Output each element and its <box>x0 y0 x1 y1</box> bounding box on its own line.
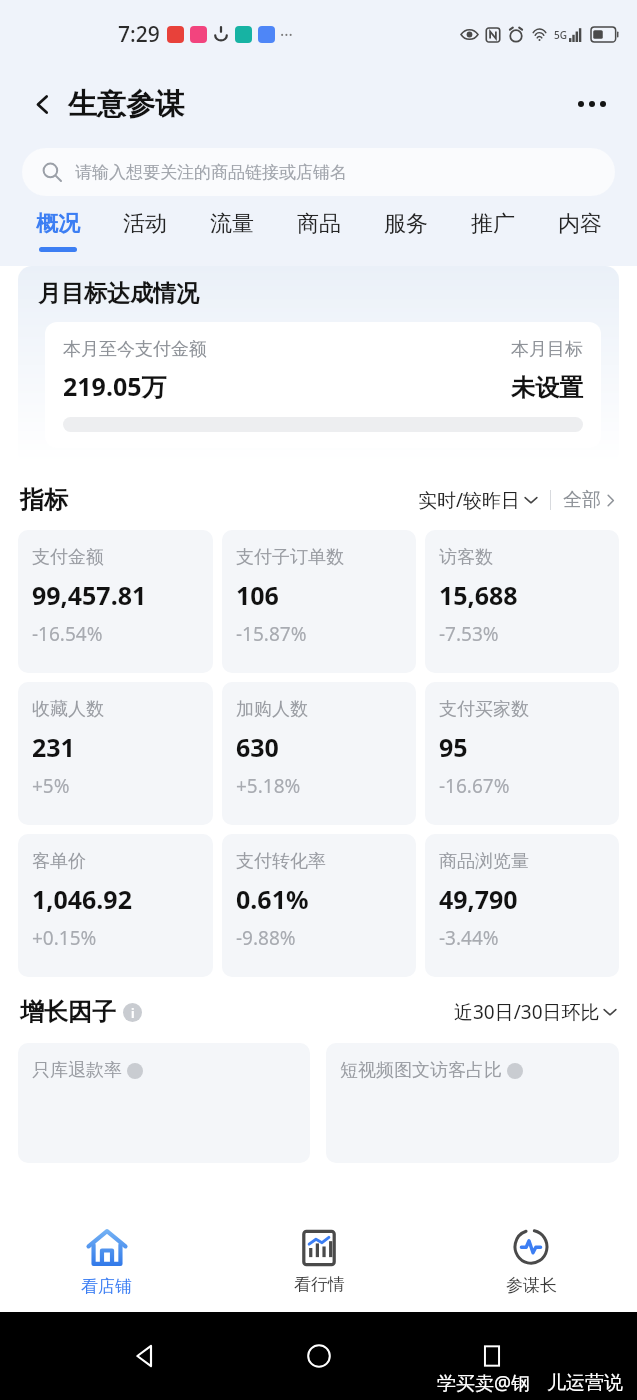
staticText: 指标 <box>20 485 68 515</box>
staticText: 访客数 <box>439 546 493 569</box>
button[interactable]: 概况 <box>14 204 101 266</box>
button[interactable]: 推广 <box>449 204 536 266</box>
staticText: 49,790 <box>439 882 518 916</box>
staticText: 商品浏览量 <box>439 850 529 873</box>
staticText: 支付买家数 <box>439 698 529 721</box>
staticText: +5.18% <box>236 773 301 799</box>
staticText: -7.53% <box>439 621 499 647</box>
staticText: 概况 <box>36 210 80 238</box>
button[interactable]: 内容 <box>536 204 623 266</box>
staticText: 月目标达成情况 <box>38 279 199 308</box>
staticText: 儿运营说 <box>547 1371 623 1395</box>
staticText: 15,688 <box>439 578 518 612</box>
staticText: 106 <box>236 578 279 612</box>
button[interactable]: 支付金额 <box>18 530 213 673</box>
staticText: -16.67% <box>439 773 510 799</box>
button[interactable]: Back <box>117 1328 173 1384</box>
staticText: +0.15% <box>32 925 97 951</box>
staticText: 内容 <box>558 210 602 238</box>
staticText: -16.54% <box>32 621 103 647</box>
button[interactable]: 参谋长 <box>425 1212 637 1312</box>
staticText: 近30日/30日环比 <box>454 999 600 1025</box>
staticText: 请输入想要关注的商品链接或店铺名 <box>75 162 347 183</box>
staticText: 支付金额 <box>32 546 104 569</box>
staticText: -15.87% <box>236 621 307 647</box>
button[interactable]: 支付买家数 <box>425 682 619 825</box>
staticText: 增长因子 <box>20 997 116 1027</box>
button[interactable]: 近30日/30日环比 <box>454 999 617 1025</box>
staticText: 看店铺 <box>81 1276 132 1297</box>
button[interactable]: 商品 <box>275 204 362 266</box>
staticText: 99,457.81 <box>32 578 147 612</box>
staticText: 630 <box>236 730 279 764</box>
button[interactable]: More options <box>569 81 615 127</box>
button[interactable]: 看店铺 <box>0 1212 213 1312</box>
button[interactable]: 商品浏览量 <box>425 834 619 977</box>
staticText: 本月目标 <box>511 338 583 361</box>
staticText: 短视频图文访客占比 <box>340 1059 502 1082</box>
button[interactable]: 客单价 <box>18 834 213 977</box>
staticText: 客单价 <box>32 850 86 873</box>
staticText: 全部 <box>563 488 601 512</box>
staticText: 商品 <box>297 210 341 238</box>
staticText: 本月至今支付金额 <box>63 338 207 361</box>
button[interactable]: 支付子订单数 <box>222 530 416 673</box>
button[interactable]: Home <box>291 1328 347 1384</box>
button[interactable]: 全部 <box>563 488 617 512</box>
staticText: 看行情 <box>294 1274 345 1295</box>
staticText: ··· <box>280 24 293 46</box>
button[interactable]: 只库退款率 <box>18 1043 310 1163</box>
button[interactable]: 看行情 <box>213 1212 425 1312</box>
staticText: 流量 <box>210 210 254 238</box>
staticText: 活动 <box>123 210 167 238</box>
button[interactable]: Recents <box>464 1328 520 1384</box>
button[interactable]: Back <box>22 84 62 124</box>
button[interactable]: 实时/较昨日 <box>418 487 538 513</box>
staticText: 未设置 <box>511 373 583 403</box>
staticText: 学买卖@钢 <box>437 1370 531 1396</box>
button[interactable]: 收藏人数 <box>18 682 213 825</box>
staticText: 7:29 <box>118 20 160 49</box>
staticText: +5% <box>32 773 70 799</box>
staticText: 参谋长 <box>506 1275 557 1296</box>
button[interactable]: 支付转化率 <box>222 834 416 977</box>
button[interactable]: 流量 <box>188 204 275 266</box>
staticText: 5G <box>554 28 567 42</box>
staticText: -9.88% <box>236 925 296 951</box>
staticText: 支付子订单数 <box>236 546 344 569</box>
staticText: 219.05万 <box>63 369 167 403</box>
staticText: 231 <box>32 730 75 764</box>
button[interactable]: 访客数 <box>425 530 619 673</box>
staticText: 只库退款率 <box>32 1059 122 1082</box>
staticText: 1,046.92 <box>32 882 132 916</box>
button[interactable]: 短视频图文访客占比 <box>326 1043 619 1163</box>
staticText: 服务 <box>384 210 428 238</box>
staticText: 支付转化率 <box>236 850 326 873</box>
staticText: 收藏人数 <box>32 698 104 721</box>
staticText: i <box>131 1005 135 1021</box>
staticText: 加购人数 <box>236 698 308 721</box>
button[interactable]: 月目标达成情况 <box>18 266 619 464</box>
staticText: 实时/较昨日 <box>418 487 521 513</box>
staticText: 0.61% <box>236 882 309 916</box>
staticText: 推广 <box>471 210 515 238</box>
button[interactable]: 服务 <box>362 204 449 266</box>
staticText: -3.44% <box>439 925 499 951</box>
button[interactable]: 请输入想要关注的商品链接或店铺名 <box>22 148 615 196</box>
staticText: 生意参谋 <box>68 86 184 123</box>
staticText: 95 <box>439 730 468 764</box>
button[interactable]: Info <box>123 1003 142 1022</box>
button[interactable]: 活动 <box>101 204 188 266</box>
button[interactable]: 加购人数 <box>222 682 416 825</box>
